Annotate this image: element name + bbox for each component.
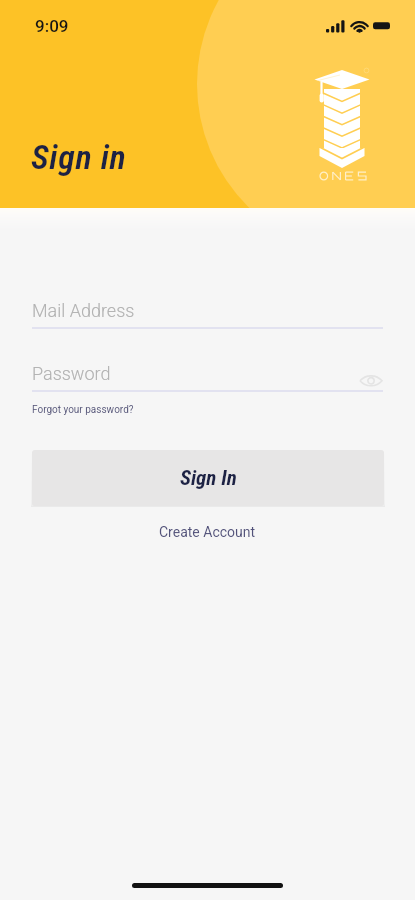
staticText: Forgot your password? bbox=[32, 404, 134, 416]
staticText: Sign In bbox=[180, 466, 237, 491]
staticText: Create Account bbox=[159, 524, 256, 540]
button[interactable]: Mail Address bbox=[32, 300, 383, 329]
button[interactable]: Create Account bbox=[151, 518, 264, 546]
other: Show password bbox=[359, 373, 383, 388]
staticText: 9:09 bbox=[35, 16, 69, 36]
button[interactable]: Forgot your password? bbox=[26, 402, 140, 418]
staticText: Password bbox=[32, 363, 111, 384]
button[interactable]: Password bbox=[32, 363, 383, 392]
staticText: Sign in bbox=[31, 137, 127, 177]
button[interactable]: Sign In bbox=[32, 450, 384, 506]
staticText: Mail Address bbox=[32, 300, 135, 321]
